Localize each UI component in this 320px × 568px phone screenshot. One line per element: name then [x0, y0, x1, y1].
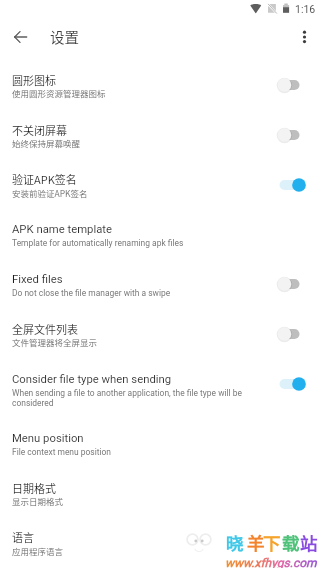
- button[interactable]: [0, 519, 320, 568]
- button[interactable]: [0, 161, 320, 211]
- staticText: 始终保持屏幕唤醒: [12, 137, 81, 149]
- staticText: 羊: [247, 530, 265, 555]
- staticText: 不关闭屏幕: [12, 122, 67, 138]
- button[interactable]: [0, 210, 320, 260]
- staticText: 站: [300, 530, 318, 555]
- staticText: 语言: [12, 529, 34, 545]
- button[interactable]: Switch off: [272, 324, 308, 344]
- staticText: 载: [282, 530, 300, 555]
- button[interactable]: [0, 310, 320, 360]
- staticText: 圆形图标: [12, 72, 56, 88]
- staticText: Do not close the file manager with a swi…: [12, 288, 171, 298]
- staticText: Menu position: [12, 432, 84, 445]
- staticText: considered: [12, 398, 54, 408]
- staticText: 验证APK签名: [12, 171, 77, 187]
- button[interactable]: [0, 360, 320, 420]
- button[interactable]: Switch off: [272, 75, 308, 95]
- button[interactable]: Switch on: [272, 374, 308, 394]
- staticText: Template for automatically renaming apk …: [12, 238, 184, 248]
- staticText: File context menu position: [12, 447, 112, 457]
- staticText: 设置: [50, 26, 79, 47]
- staticText: www.xfhygs.com: [225, 556, 317, 568]
- button[interactable]: More options: [291, 19, 318, 46]
- button[interactable]: [0, 469, 320, 519]
- button[interactable]: Switch on: [272, 175, 308, 195]
- staticText: 安装前验证APK签名: [12, 187, 88, 199]
- staticText: 使用圆形资源管理器图标: [12, 87, 106, 99]
- button[interactable]: [0, 419, 320, 469]
- button[interactable]: [0, 61, 320, 111]
- staticText: 全屏文件列表: [12, 321, 78, 337]
- button[interactable]: Back: [7, 23, 34, 50]
- button[interactable]: Switch off: [272, 274, 308, 294]
- button[interactable]: [0, 111, 320, 161]
- staticText: 日期格式: [12, 480, 56, 496]
- staticText: 应用程序语言: [12, 545, 64, 557]
- staticText: Fixed files: [12, 273, 63, 286]
- staticText: 晓: [226, 530, 244, 555]
- staticText: Consider file type when sending: [12, 373, 172, 386]
- staticText: 显示日期格式: [12, 495, 64, 507]
- staticText: APK name template: [12, 223, 112, 236]
- staticText: 1:16: [295, 3, 316, 15]
- button[interactable]: Switch off: [272, 125, 308, 145]
- staticText: 文件管理器将全屏显示: [12, 336, 98, 348]
- staticText: 下: [263, 530, 281, 555]
- button[interactable]: [0, 260, 320, 310]
- staticText: When sending a file to another applicati…: [12, 388, 242, 398]
